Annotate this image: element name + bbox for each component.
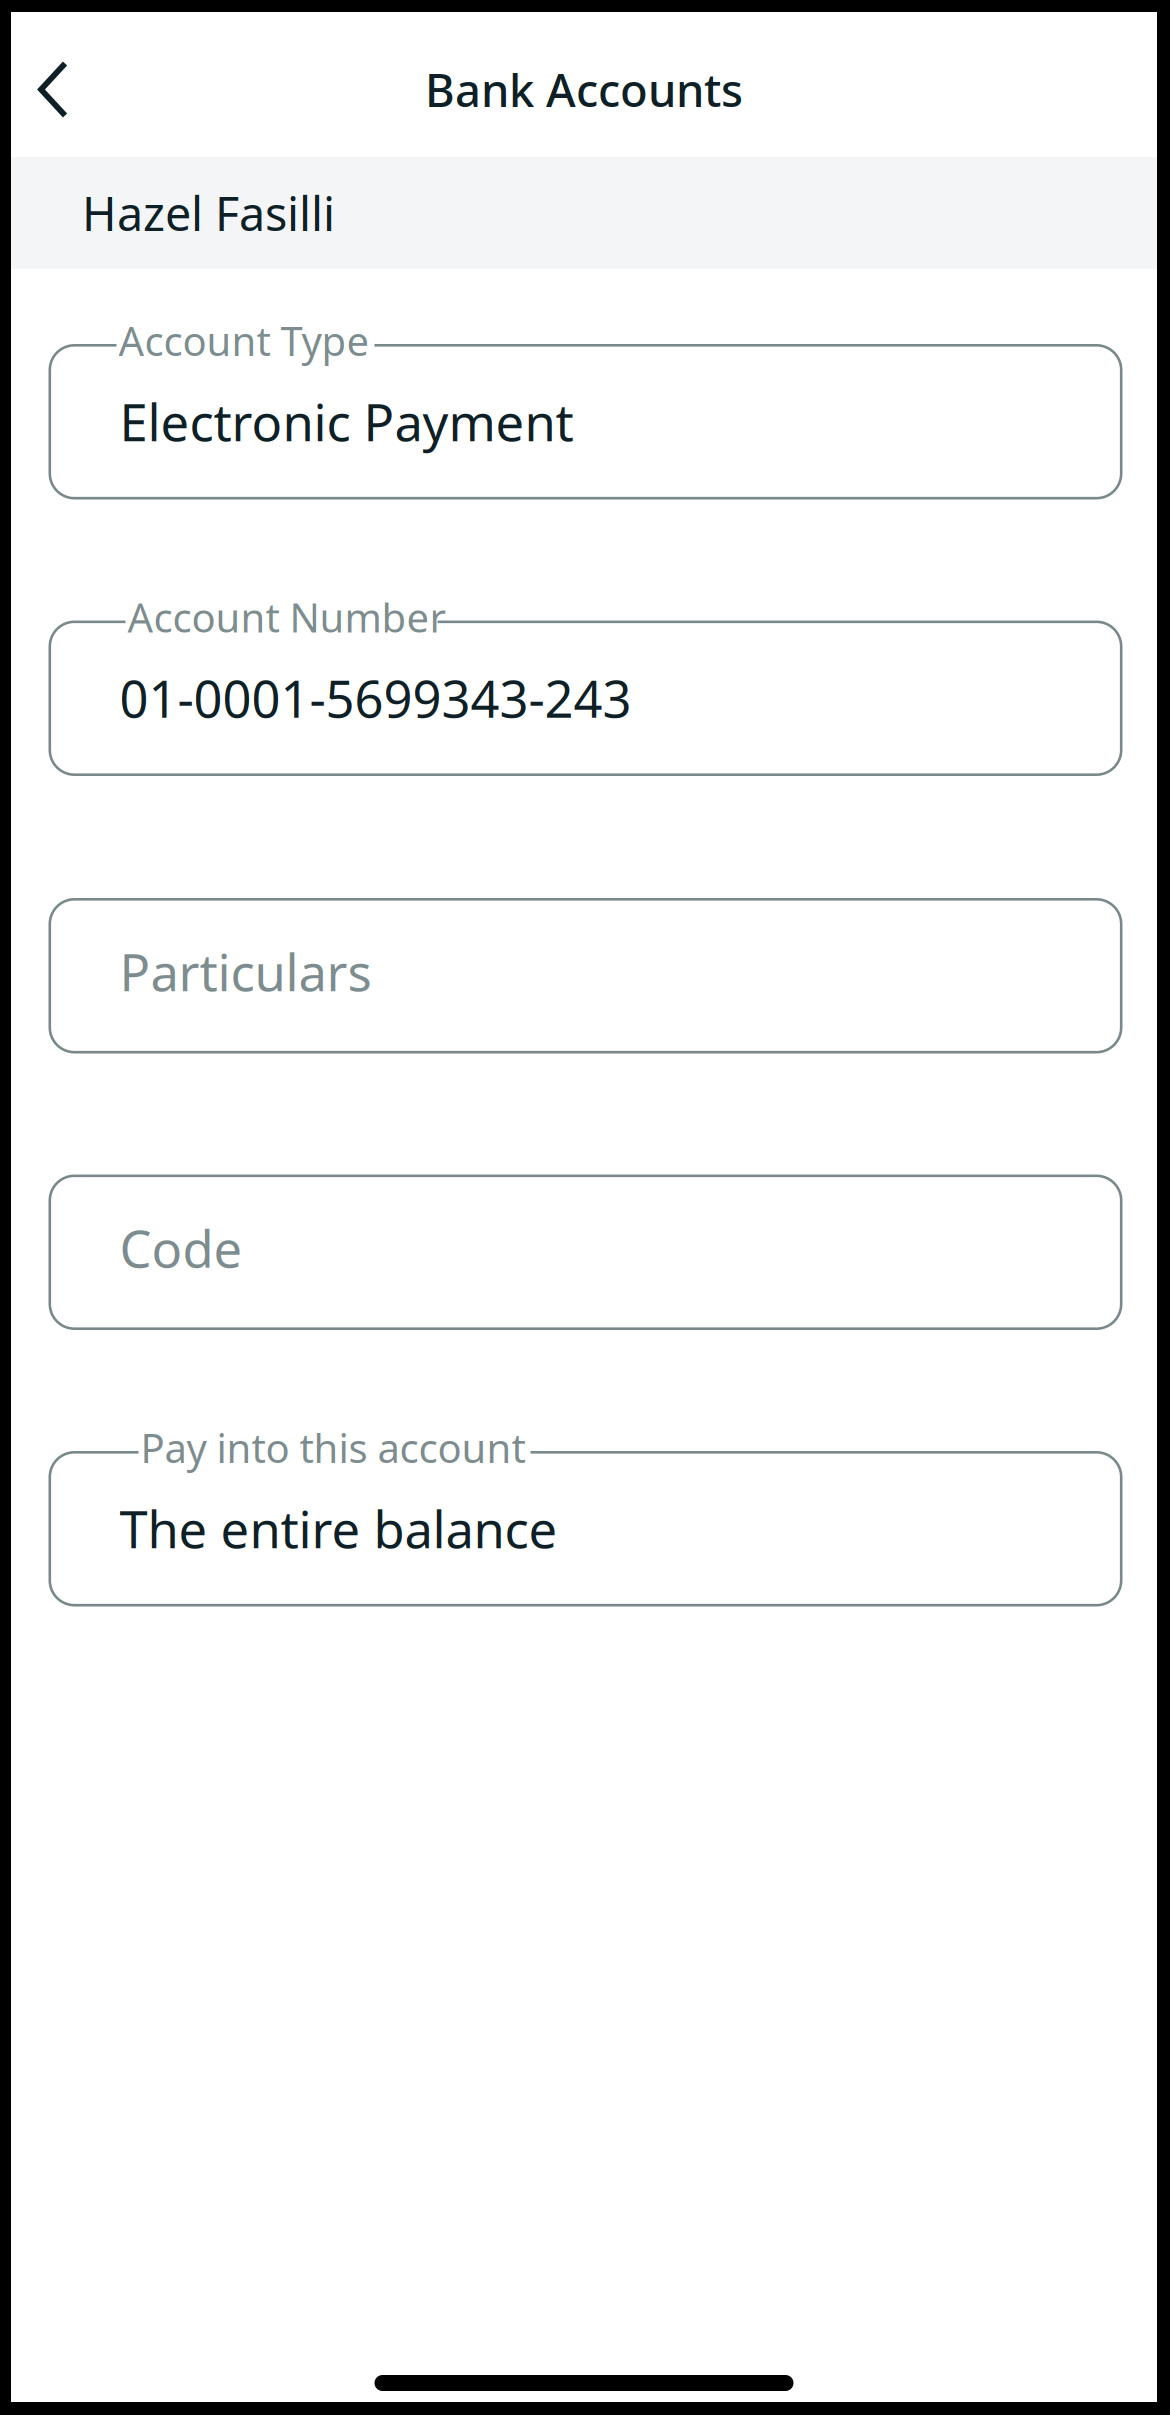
button[interactable]: Particulars	[45, 898, 1122, 1053]
staticText: Code	[119, 1214, 242, 1282]
button[interactable]: Account Type	[45, 344, 1122, 499]
staticText: Account Number	[127, 590, 446, 644]
button[interactable]: Pay into this account	[45, 1451, 1122, 1606]
staticText: Bank Accounts	[425, 59, 743, 120]
staticText: Account Type	[118, 314, 369, 367]
staticText: Hazel Fasilli	[82, 182, 335, 244]
staticText: 01-0001-5699343-243	[119, 664, 631, 732]
staticText: Particulars	[119, 938, 371, 1005]
button[interactable]: Back	[11, 12, 121, 157]
staticText: Pay into this account	[140, 1421, 525, 1474]
button[interactable]: Code	[45, 1174, 1122, 1330]
staticText: The entire balance	[119, 1495, 557, 1562]
staticText: Electronic Payment	[119, 388, 573, 455]
button[interactable]: Account Number	[45, 620, 1122, 776]
